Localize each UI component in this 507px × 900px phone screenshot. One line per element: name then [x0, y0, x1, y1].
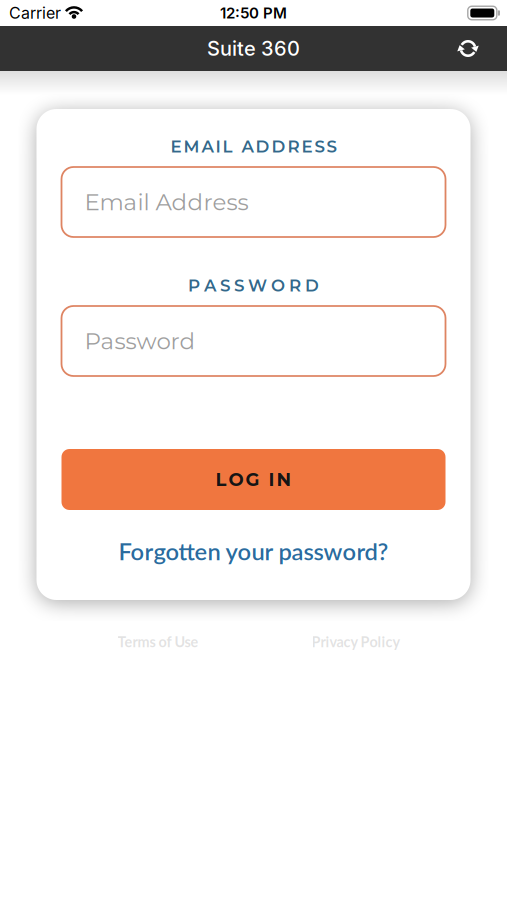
staticText: Terms of Use — [117, 633, 198, 650]
button[interactable]: Forgotten your password? — [118, 539, 388, 563]
button[interactable]: Terms of Use — [117, 633, 198, 650]
button[interactable]: Refresh — [446, 26, 490, 71]
staticText: P A S S W O R D — [188, 275, 319, 296]
staticText: Carrier — [9, 3, 61, 23]
staticText: L O G I N — [215, 468, 291, 490]
button[interactable]: Email Address — [61, 167, 445, 237]
staticText: Suite 360 — [207, 36, 300, 61]
button[interactable]: Password — [61, 306, 445, 376]
staticText: Privacy Policy — [311, 633, 400, 650]
staticText: Password — [84, 327, 195, 355]
button[interactable]: Privacy Policy — [311, 633, 400, 650]
staticText: 12:50 PM — [220, 4, 287, 22]
staticText: Email Address — [84, 188, 248, 216]
button[interactable]: L O G I N — [61, 449, 445, 510]
staticText: Forgotten your password? — [118, 537, 388, 565]
staticText: E M A I L A D D R E S S — [170, 136, 336, 157]
